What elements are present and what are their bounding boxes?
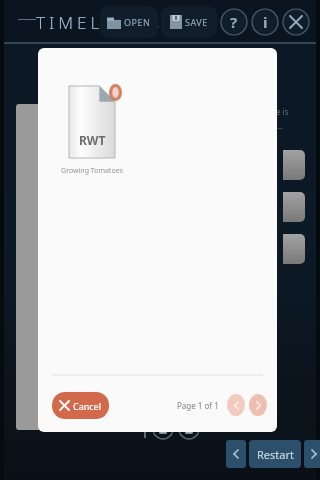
staticText: Restart xyxy=(257,447,294,462)
staticText: — xyxy=(276,123,283,133)
staticText: Growing Tomatoes xyxy=(61,166,123,176)
staticText: i xyxy=(263,12,268,32)
button[interactable]: Tool xyxy=(178,418,200,440)
staticText: Cancel xyxy=(73,400,102,412)
button[interactable]: SAVE xyxy=(161,6,217,38)
button[interactable] xyxy=(283,234,305,264)
staticText: Page 1 of 1 xyxy=(177,400,219,411)
button[interactable]: Restart xyxy=(249,440,301,468)
button[interactable]: Delete xyxy=(109,84,122,101)
button[interactable]: RWT xyxy=(69,86,115,158)
button[interactable]: Close xyxy=(282,8,310,36)
staticText: e is xyxy=(276,106,289,117)
button[interactable] xyxy=(283,192,305,222)
button[interactable]: Cancel xyxy=(52,392,109,419)
button[interactable]: Tool xyxy=(152,418,174,440)
button[interactable]: Next page xyxy=(249,394,267,416)
staticText: SAVE xyxy=(185,16,208,28)
button[interactable]: Next xyxy=(304,440,320,468)
staticText: RWT xyxy=(79,132,106,148)
button[interactable]: Help xyxy=(220,8,248,36)
staticText: OPEN xyxy=(124,16,151,28)
staticText: ? xyxy=(230,12,238,32)
button[interactable]: Previous page xyxy=(227,394,245,416)
button[interactable]: Info xyxy=(251,8,279,36)
staticText: TIMELINE xyxy=(36,11,143,34)
button[interactable] xyxy=(283,150,305,180)
button[interactable]: OPEN xyxy=(100,6,158,38)
button[interactable]: Previous xyxy=(226,440,246,468)
